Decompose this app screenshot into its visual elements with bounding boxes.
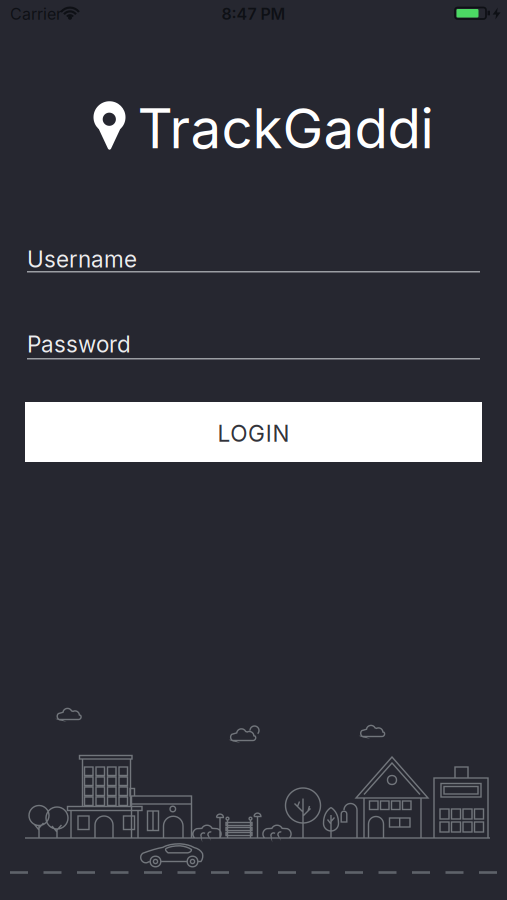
staticText: Password [27,331,131,358]
staticText: TrackGaddi [137,96,433,160]
staticText: 8:47 PM [221,4,285,23]
staticText: Username [27,246,137,273]
staticText: Carrier [10,4,62,23]
button[interactable]: Username [27,235,480,272]
button[interactable]: LOGIN [25,402,482,462]
button[interactable]: Password [27,322,480,359]
staticText: LOGIN [217,420,290,447]
